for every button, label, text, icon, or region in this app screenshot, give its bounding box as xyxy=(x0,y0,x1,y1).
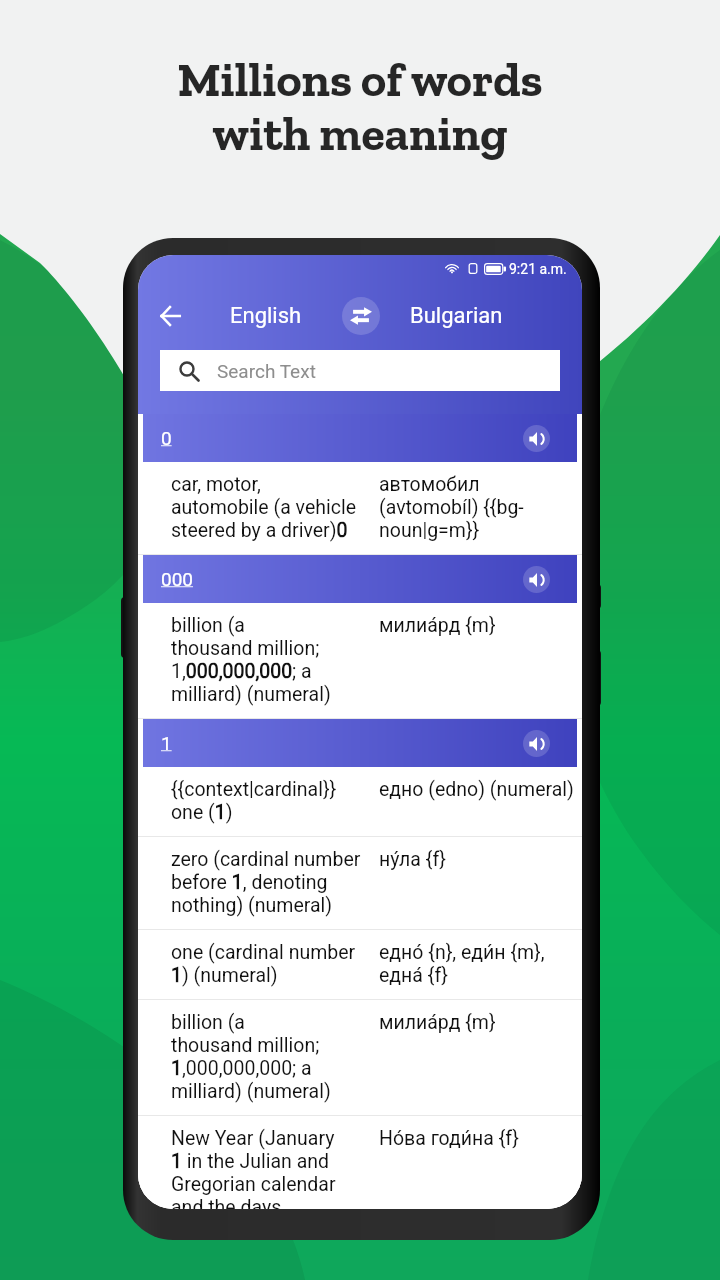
staticText: 9:21 a.m. xyxy=(509,261,567,277)
staticText: 0 xyxy=(161,427,172,449)
button[interactable]: 1 xyxy=(143,719,577,767)
staticText: Bulgarian xyxy=(410,303,503,329)
staticText: автомобил (avtomobíl) {{bg- noun|g=m}} xyxy=(379,473,578,542)
button[interactable]: zero (cardinal number before 1, denoting… xyxy=(138,837,582,929)
button[interactable]: billion (a thousand million; 1,000,000,0… xyxy=(138,603,582,718)
button[interactable]: Back xyxy=(146,292,194,340)
staticText: Millions of words with meaning xyxy=(177,51,543,162)
staticText: Но́ва годи́на {f} xyxy=(379,1127,578,1150)
staticText: едно́ {n}, еди́н {m}, една́ {f} xyxy=(379,941,578,987)
staticText: billion (a thousand million; 1,000,000,0… xyxy=(171,614,367,706)
button[interactable]: Pronounce xyxy=(523,566,550,593)
button[interactable]: {{context|cardinal}} one (1) xyxy=(138,767,582,836)
staticText: 000 xyxy=(161,568,194,590)
staticText: 1 xyxy=(161,732,172,754)
button[interactable]: Swap languages xyxy=(342,297,380,335)
button[interactable]: Bulgarian xyxy=(363,291,549,341)
staticText: New Year (January 1 in the Julian and Gr… xyxy=(171,1127,367,1209)
staticText: Search Text xyxy=(217,360,316,382)
staticText: едно (edno) (numeral) xyxy=(379,778,578,801)
button[interactable]: Pronounce xyxy=(523,425,550,452)
staticText: ну́ла {f} xyxy=(379,848,578,871)
staticText: милиа́рд {m} xyxy=(379,1011,578,1034)
button[interactable]: car, motor, automobile (a vehicle steere… xyxy=(138,462,582,554)
button[interactable]: billion (a thousand million; 1,000,000,0… xyxy=(138,1000,582,1115)
button[interactable]: New Year (January 1 in the Julian and Gr… xyxy=(138,1116,582,1209)
staticText: car, motor, automobile (a vehicle steere… xyxy=(171,473,367,542)
staticText: милиа́рд {m} xyxy=(379,614,578,637)
button[interactable]: English xyxy=(195,291,337,341)
button[interactable]: 000 xyxy=(143,555,577,603)
staticText: zero (cardinal number before 1, denoting… xyxy=(171,848,367,917)
button[interactable]: one (cardinal number 1) (numeral) xyxy=(138,930,582,999)
staticText: billion (a thousand million; 1,000,000,0… xyxy=(171,1011,367,1103)
button[interactable]: 0 xyxy=(143,414,577,462)
staticText: {{context|cardinal}} one (1) xyxy=(171,778,367,824)
button[interactable]: Pronounce xyxy=(523,730,550,757)
staticText: English xyxy=(230,303,302,329)
staticText: one (cardinal number 1) (numeral) xyxy=(171,941,367,987)
button[interactable]: Search Text xyxy=(160,350,560,391)
